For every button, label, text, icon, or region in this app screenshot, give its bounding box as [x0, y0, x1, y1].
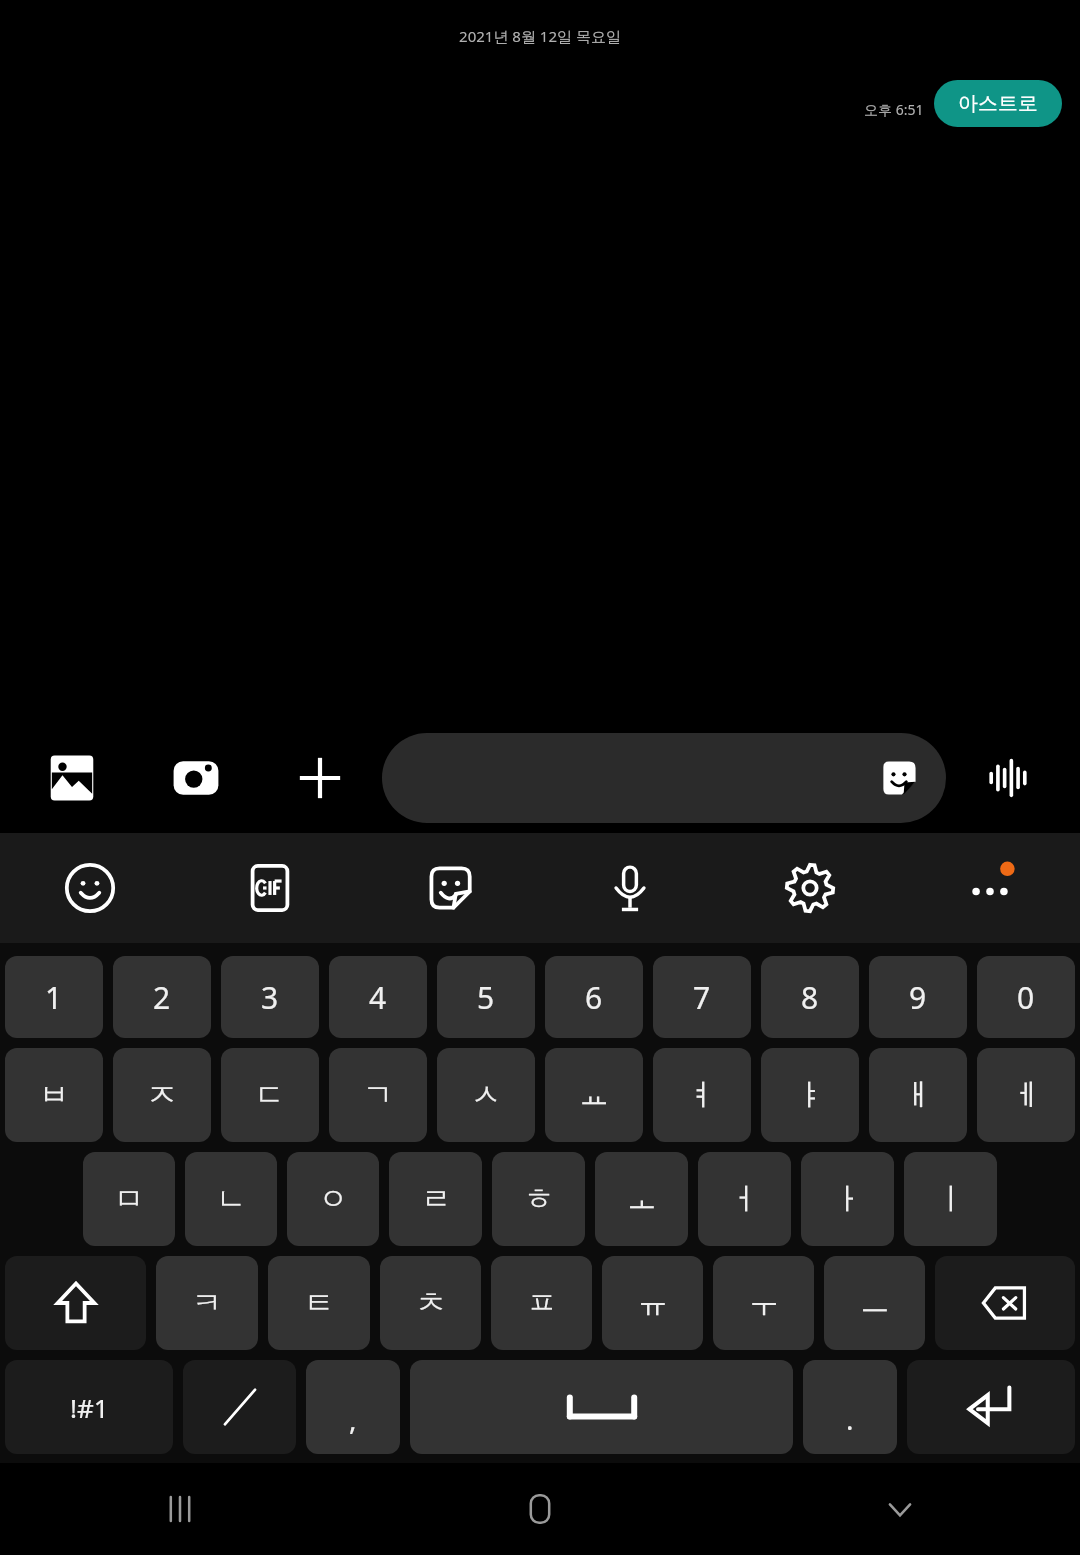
button[interactable]: ㄷ	[221, 1048, 319, 1142]
button[interactable]: ㄱ	[329, 1048, 427, 1142]
button[interactable]: Space	[410, 1360, 793, 1454]
staticText: ㅠ	[638, 1284, 668, 1322]
button[interactable]: ㅇ	[287, 1152, 379, 1246]
button[interactable]: Enter	[907, 1360, 1075, 1454]
button[interactable]: 아스트로	[934, 80, 1062, 127]
button[interactable]: ㅅ	[437, 1048, 535, 1142]
staticText: ㅔ	[1011, 1076, 1041, 1114]
staticText: ㅌ	[304, 1284, 334, 1322]
staticText: ㅓ	[730, 1180, 760, 1218]
button[interactable]: Settings	[720, 833, 900, 943]
button[interactable]: ㅣ	[904, 1152, 997, 1246]
staticText: 2	[153, 977, 171, 1018]
staticText: 오후 6:51	[864, 100, 924, 119]
button[interactable]: ㅈ	[113, 1048, 211, 1142]
button[interactable]: 2	[113, 956, 211, 1038]
button[interactable]: ㅡ	[824, 1256, 925, 1350]
staticText: ㅅ	[471, 1076, 501, 1114]
staticText: 6	[585, 977, 603, 1018]
staticText: ㅈ	[147, 1076, 177, 1114]
staticText: 0	[1017, 977, 1035, 1018]
button[interactable]: Korean English toggle	[183, 1360, 296, 1454]
staticText: 5	[477, 977, 495, 1018]
staticText: ㅊ	[416, 1284, 446, 1322]
button[interactable]: Stickers	[876, 755, 922, 801]
button[interactable]: 6	[545, 956, 643, 1038]
button[interactable]: ㅎ	[492, 1152, 585, 1246]
button[interactable]: ㅂ	[5, 1048, 103, 1142]
button[interactable]: ㅁ	[83, 1152, 175, 1246]
button[interactable]: 9	[869, 956, 967, 1038]
staticText: ㅇ	[318, 1180, 348, 1218]
button[interactable]: ㅛ	[545, 1048, 643, 1142]
button[interactable]: Backspace	[935, 1256, 1075, 1350]
button[interactable]: ㄹ	[389, 1152, 482, 1246]
button[interactable]: Shift	[5, 1256, 146, 1350]
button[interactable]: ㅠ	[602, 1256, 703, 1350]
button[interactable]: Sticker	[360, 833, 540, 943]
button[interactable]: 1	[5, 956, 103, 1038]
staticText: ㅍ	[527, 1284, 557, 1322]
button[interactable]: Hide keyboard	[720, 1463, 1080, 1555]
button[interactable]: ,	[306, 1360, 400, 1454]
button[interactable]: !#1	[5, 1360, 173, 1454]
staticText: ,	[349, 1400, 357, 1438]
button[interactable]: ㅕ	[653, 1048, 751, 1142]
button[interactable]: ㅏ	[801, 1152, 894, 1246]
button[interactable]: .	[803, 1360, 897, 1454]
button[interactable]: 8	[761, 956, 859, 1038]
staticText: ㅑ	[795, 1076, 825, 1114]
button[interactable]: ㅜ	[713, 1256, 814, 1350]
staticText: ㅜ	[749, 1284, 779, 1322]
staticText: ㄷ	[255, 1076, 285, 1114]
staticText: .	[846, 1400, 854, 1438]
button[interactable]: Stickers	[382, 733, 946, 823]
button[interactable]: ㅑ	[761, 1048, 859, 1142]
button[interactable]: ㅗ	[595, 1152, 688, 1246]
button[interactable]: Voice message	[946, 723, 1070, 833]
staticText: ㅕ	[687, 1076, 717, 1114]
button[interactable]: ㅋ	[156, 1256, 258, 1350]
button[interactable]: Gallery	[10, 723, 134, 833]
button[interactable]: Emoji	[0, 833, 180, 943]
button[interactable]: ㄴ	[185, 1152, 277, 1246]
staticText: 1	[45, 977, 63, 1018]
staticText: ㅁ	[114, 1180, 144, 1218]
staticText: ㅏ	[833, 1180, 863, 1218]
button[interactable]: 5	[437, 956, 535, 1038]
button[interactable]: More options	[900, 833, 1080, 943]
button[interactable]: 7	[653, 956, 751, 1038]
button[interactable]: 4	[329, 956, 427, 1038]
button[interactable]: ㅐ	[869, 1048, 967, 1142]
button[interactable]: ㅍ	[491, 1256, 592, 1350]
button[interactable]: Voice input	[540, 833, 720, 943]
staticText: ㅗ	[627, 1180, 657, 1218]
staticText: ㅋ	[192, 1284, 222, 1322]
staticText: ㄴ	[216, 1180, 246, 1218]
button[interactable]: Home	[360, 1463, 720, 1555]
staticText: ㅡ	[860, 1284, 890, 1322]
staticText: 7	[693, 977, 711, 1018]
button[interactable]: ㅊ	[380, 1256, 481, 1350]
button[interactable]: Add attachment	[258, 723, 382, 833]
staticText: 4	[369, 977, 387, 1018]
staticText: 아스트로	[958, 91, 1038, 116]
staticText: ㄱ	[363, 1076, 393, 1114]
button[interactable]: Recent apps	[0, 1463, 360, 1555]
staticText: 3	[261, 977, 279, 1018]
button[interactable]: ㅌ	[268, 1256, 370, 1350]
button[interactable]: Camera	[134, 723, 258, 833]
staticText: 2021년 8월 12일 목요일	[459, 26, 621, 46]
staticText: ㅂ	[39, 1076, 69, 1114]
staticText: 9	[909, 977, 927, 1018]
staticText: ㄹ	[421, 1180, 451, 1218]
button[interactable]: GIF	[180, 833, 360, 943]
staticText: ㅎ	[524, 1180, 554, 1218]
button[interactable]: 0	[977, 956, 1075, 1038]
button[interactable]: ㅔ	[977, 1048, 1075, 1142]
button[interactable]: 3	[221, 956, 319, 1038]
button[interactable]: ㅓ	[698, 1152, 791, 1246]
staticText: 8	[801, 977, 819, 1018]
staticText: ㅛ	[579, 1076, 609, 1114]
staticText: !#1	[70, 1390, 109, 1425]
